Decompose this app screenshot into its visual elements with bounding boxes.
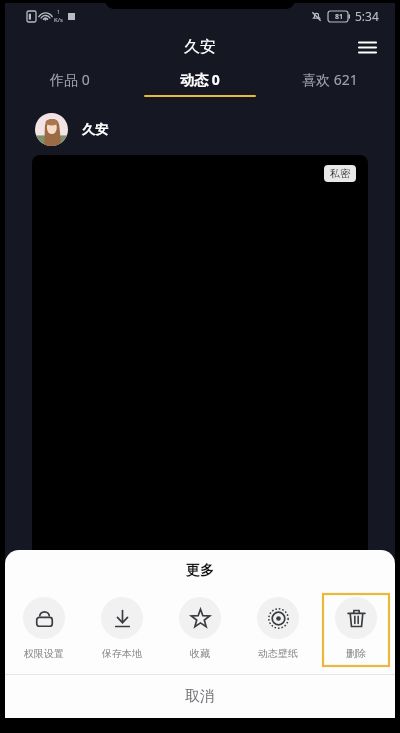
button[interactable]: 删除: [335, 594, 377, 666]
staticText: 删除: [346, 647, 366, 660]
button[interactable]: 收藏: [179, 594, 221, 666]
button[interactable]: 私密: [32, 155, 368, 718]
button[interactable]: 久安: [35, 111, 395, 147]
staticText: 动态 0: [180, 70, 220, 89]
button[interactable]: 权限设置: [23, 594, 65, 666]
button[interactable]: 保存本地: [101, 594, 143, 666]
staticText: 作品 0: [50, 70, 90, 89]
staticText: 私密: [330, 167, 350, 180]
staticText: 1: [57, 9, 60, 16]
staticText: 保存本地: [102, 647, 142, 660]
button[interactable]: Menu: [351, 31, 383, 63]
staticText: 久安: [184, 37, 216, 57]
staticText: 取消: [185, 687, 215, 706]
button[interactable]: 动态 0: [135, 65, 265, 101]
staticText: 喜欢 621: [302, 70, 358, 89]
button[interactable]: 喜欢 621: [265, 65, 395, 101]
staticText: 5:34: [355, 8, 379, 24]
staticText: 久安: [82, 121, 108, 137]
staticText: 81: [335, 12, 344, 22]
staticText: 权限设置: [24, 647, 64, 660]
staticText: 动态壁纸: [258, 647, 298, 660]
staticText: K/s: [54, 16, 63, 24]
button[interactable]: 动态壁纸: [257, 594, 299, 666]
button[interactable]: 取消: [5, 675, 395, 718]
staticText: 更多: [5, 562, 395, 580]
staticText: 收藏: [190, 647, 210, 660]
button[interactable]: 作品 0: [5, 65, 135, 101]
